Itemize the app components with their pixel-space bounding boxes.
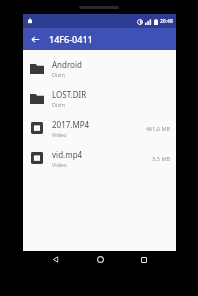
staticText: 2017.MP4 xyxy=(52,119,90,130)
staticText: 20:48 xyxy=(160,18,173,25)
staticText: Dizin xyxy=(52,71,65,78)
staticText: Video xyxy=(52,161,67,168)
staticText: Dizin xyxy=(52,101,65,108)
button[interactable]: Recent apps xyxy=(131,251,157,268)
button[interactable]: Back xyxy=(42,251,68,268)
staticText: 5,5 MB xyxy=(152,155,170,162)
staticText: Android xyxy=(52,59,82,70)
staticText: 14F6-0411 xyxy=(49,33,93,45)
staticText: Video xyxy=(52,131,67,138)
button[interactable]: LOST.DIR xyxy=(23,83,176,113)
button[interactable]: 2017.MP4 xyxy=(23,113,176,143)
staticText: vid.mp4 xyxy=(52,149,83,160)
button[interactable]: Android xyxy=(23,53,176,83)
staticText: LOST.DIR xyxy=(52,89,87,100)
button[interactable]: Home xyxy=(87,251,113,268)
staticText: 461,0 MB xyxy=(145,125,170,132)
button[interactable]: Back xyxy=(27,31,43,47)
button[interactable]: vid.mp4 xyxy=(23,143,176,173)
